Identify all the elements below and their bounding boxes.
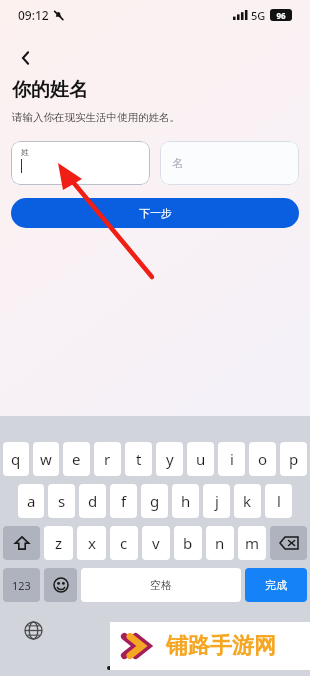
staticText: f [121, 491, 127, 511]
staticText: 96 [276, 10, 286, 21]
staticText: y [166, 449, 174, 469]
button[interactable]: Shift [3, 526, 40, 560]
button[interactable]: m [238, 526, 266, 560]
staticText: s [58, 491, 66, 511]
staticText: x [88, 533, 96, 553]
staticText: 铺路手游网 [166, 632, 276, 660]
staticText: 123 [12, 578, 31, 593]
button[interactable]: 名 [160, 141, 299, 185]
staticText: r [104, 449, 111, 469]
button[interactable]: p [280, 442, 307, 476]
staticText: d [88, 491, 98, 511]
button[interactable]: c [110, 526, 138, 560]
staticText: n [215, 533, 225, 553]
button[interactable]: x [77, 526, 106, 560]
staticText: a [27, 491, 36, 511]
button[interactable]: b [174, 526, 202, 560]
button[interactable]: i [218, 442, 245, 476]
button[interactable]: Switch language [20, 617, 46, 643]
button[interactable]: q [3, 442, 29, 476]
button[interactable]: 123 [3, 568, 40, 602]
button[interactable]: e [63, 442, 90, 476]
button[interactable]: n [206, 526, 234, 560]
button[interactable]: Backspace [270, 526, 307, 560]
button[interactable]: u [187, 442, 214, 476]
staticText: 完成 [265, 578, 287, 592]
staticText: z [55, 533, 63, 553]
button[interactable]: j [203, 484, 230, 518]
button[interactable]: t [125, 442, 152, 476]
button[interactable]: v [142, 526, 170, 560]
button[interactable]: f [110, 484, 137, 518]
staticText: 下一步 [139, 206, 172, 220]
button[interactable]: g [141, 484, 168, 518]
button[interactable]: w [33, 442, 59, 476]
button[interactable]: r [94, 442, 121, 476]
button[interactable]: s [48, 484, 75, 518]
staticText: 姓 [21, 147, 29, 157]
staticText: t [136, 449, 142, 469]
staticText: m [245, 533, 260, 553]
staticText: o [258, 449, 268, 469]
staticText: h [181, 491, 191, 511]
button[interactable]: Emoji [44, 568, 77, 602]
staticText: 请输入你在现实生活中使用的姓名。 [12, 111, 180, 124]
button[interactable]: 下一步 [11, 198, 299, 228]
staticText: l [277, 491, 281, 511]
button[interactable]: 空格 [81, 568, 241, 602]
staticText: c [120, 533, 128, 553]
button[interactable]: Back [10, 42, 42, 74]
button[interactable]: y [156, 442, 183, 476]
staticText: q [11, 449, 21, 469]
staticText: p [289, 449, 299, 469]
button[interactable]: z [44, 526, 73, 560]
staticText: 名 [172, 156, 183, 170]
staticText: b [183, 533, 193, 553]
button[interactable]: l [265, 484, 292, 518]
staticText: j [215, 491, 219, 511]
button[interactable]: o [249, 442, 276, 476]
staticText: g [150, 491, 160, 511]
button[interactable]: a [18, 484, 44, 518]
button[interactable]: h [172, 484, 199, 518]
staticText: 空格 [150, 578, 172, 592]
staticText: 5G [251, 8, 266, 23]
staticText: 09:12 [18, 7, 49, 23]
button[interactable]: d [79, 484, 106, 518]
staticText: w [40, 449, 52, 469]
staticText: v [152, 533, 160, 553]
staticText: 你的姓名 [12, 78, 88, 102]
staticText: e [72, 449, 81, 469]
button[interactable]: 姓 [11, 141, 150, 185]
staticText: u [196, 449, 206, 469]
staticText: i [230, 449, 234, 469]
button[interactable]: k [234, 484, 261, 518]
button[interactable]: 完成 [245, 568, 307, 602]
staticText: k [243, 491, 252, 511]
